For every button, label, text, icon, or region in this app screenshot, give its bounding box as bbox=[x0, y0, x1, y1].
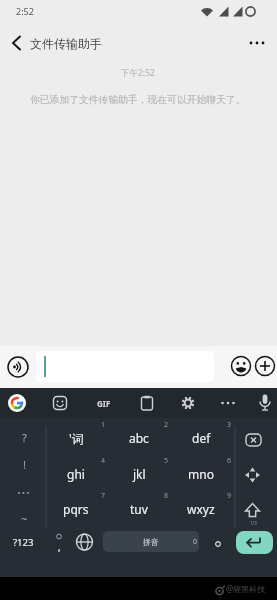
staticText: 你已添加了文件传输助手，现在可以开始聊天了。 bbox=[30, 94, 246, 106]
staticText: 文件传输助手 bbox=[30, 36, 102, 51]
button[interactable] bbox=[139, 395, 155, 411]
staticText: , bbox=[58, 540, 61, 554]
button[interactable] bbox=[180, 395, 196, 411]
button[interactable] bbox=[52, 395, 68, 411]
button[interactable] bbox=[73, 532, 96, 572]
staticText: wxyz bbox=[187, 501, 215, 517]
button[interactable]: 1/3 bbox=[236, 496, 277, 530]
button[interactable] bbox=[1, 532, 46, 572]
button[interactable] bbox=[2, 424, 44, 450]
button[interactable]: GIF bbox=[88, 388, 120, 418]
staticText: 6 bbox=[227, 456, 232, 466]
button[interactable] bbox=[203, 532, 233, 572]
button[interactable] bbox=[110, 421, 172, 455]
staticText: ! bbox=[23, 457, 26, 472]
staticText: jkl bbox=[133, 466, 146, 482]
staticText: tuv bbox=[130, 501, 148, 517]
staticText: ? bbox=[22, 430, 27, 445]
staticText: 7 bbox=[101, 491, 106, 501]
button[interactable] bbox=[8, 394, 26, 412]
staticText: 5 bbox=[164, 456, 169, 466]
button[interactable] bbox=[110, 457, 172, 491]
button[interactable] bbox=[236, 426, 277, 454]
staticText: pqrs bbox=[63, 501, 89, 517]
button[interactable] bbox=[173, 421, 235, 455]
button[interactable] bbox=[236, 531, 273, 554]
staticText: mno bbox=[188, 466, 214, 482]
button[interactable]: , bbox=[47, 532, 71, 572]
staticText: def bbox=[192, 430, 211, 446]
staticText: ~ bbox=[21, 511, 28, 526]
staticText: 4 bbox=[101, 456, 106, 466]
button[interactable]: 文件传输助手 bbox=[30, 30, 102, 56]
staticText: 2 bbox=[164, 420, 169, 430]
staticText: GIF bbox=[97, 398, 111, 409]
button[interactable] bbox=[218, 395, 238, 411]
staticText: 8 bbox=[164, 491, 169, 501]
button[interactable] bbox=[2, 480, 44, 506]
button[interactable] bbox=[173, 457, 235, 491]
button[interactable] bbox=[244, 30, 272, 56]
staticText: 0 bbox=[193, 537, 198, 547]
button[interactable] bbox=[254, 355, 276, 377]
button[interactable] bbox=[236, 462, 277, 490]
staticText: 拼音 bbox=[143, 537, 159, 547]
button[interactable] bbox=[2, 506, 44, 532]
staticText: ?123 bbox=[13, 536, 34, 549]
button[interactable] bbox=[230, 355, 252, 377]
staticText: abc bbox=[129, 430, 149, 446]
button[interactable] bbox=[36, 351, 214, 382]
staticText: 9 bbox=[227, 491, 232, 501]
button[interactable]: 拼音 bbox=[103, 531, 199, 552]
staticText: 1/3 bbox=[250, 520, 257, 526]
staticText: '词 bbox=[69, 430, 84, 446]
button[interactable] bbox=[257, 393, 273, 413]
staticText: ghi bbox=[67, 466, 85, 482]
button[interactable] bbox=[47, 421, 109, 455]
button[interactable] bbox=[2, 451, 44, 477]
staticText: 3 bbox=[227, 420, 232, 430]
button[interactable] bbox=[173, 492, 235, 526]
button[interactable] bbox=[47, 457, 109, 491]
button[interactable] bbox=[4, 30, 30, 56]
staticText: @猩黑科技 bbox=[226, 583, 266, 594]
staticText: 2:52 bbox=[16, 5, 34, 17]
button[interactable] bbox=[47, 492, 109, 526]
staticText: 1 bbox=[101, 420, 106, 430]
button[interactable] bbox=[110, 492, 172, 526]
button[interactable] bbox=[7, 356, 29, 378]
staticText: 下午2:52 bbox=[121, 67, 155, 79]
